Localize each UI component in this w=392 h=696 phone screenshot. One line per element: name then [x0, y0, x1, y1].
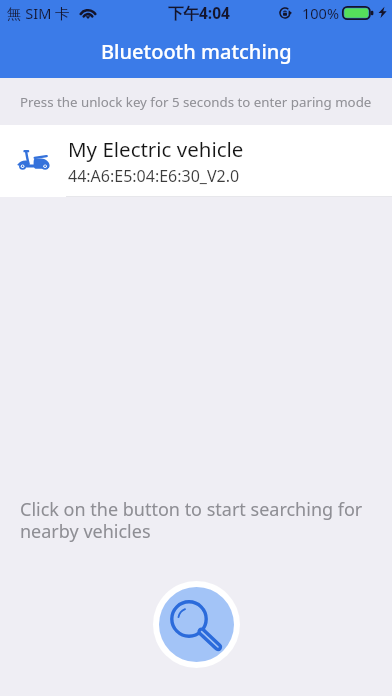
staticText: Click on the button to start searching f…: [20, 497, 372, 543]
staticText: 無 SIM 卡: [7, 3, 70, 23]
staticText: Press the unlock key for 5 seconds to en…: [20, 93, 372, 111]
staticText: Bluetooth matching: [101, 38, 292, 65]
staticText: My Electric vehicle: [68, 135, 244, 163]
button[interactable]: My Electric vehicle: [0, 125, 392, 197]
staticText: 下午4:04: [168, 2, 230, 23]
staticText: 100%: [302, 3, 339, 23]
staticText: 44:A6:E5:04:E6:30_V2.0: [68, 165, 240, 187]
button[interactable]: Search for nearby vehicles: [159, 587, 234, 662]
